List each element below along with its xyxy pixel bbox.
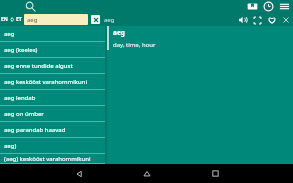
- button[interactable]: aeg (keeles): [0, 42, 105, 58]
- button[interactable]: aeg on ümber: [0, 106, 105, 122]
- staticText: aeg lendab: [4, 94, 36, 102]
- button[interactable]: Recents: [181, 164, 249, 183]
- button[interactable]: Search: [25, 1, 36, 12]
- button[interactable]: Back: [45, 164, 113, 183]
- button[interactable]: aeg keskööst varahommikuni: [0, 74, 105, 90]
- staticText: aeg: [104, 16, 115, 24]
- staticText: (aeg) keskööst varahommikuni: [4, 155, 91, 163]
- staticText: aeg keskööst varahommikuni: [4, 78, 87, 86]
- button[interactable]: Fullscreen: [253, 16, 262, 25]
- staticText: aeg enne tundide algust: [4, 62, 73, 70]
- button[interactable]: EN: [1, 16, 22, 23]
- button[interactable]: Favorite: [267, 15, 277, 25]
- button[interactable]: Home: [113, 164, 181, 183]
- button[interactable]: aeg): [0, 138, 105, 154]
- staticText: aeg): [4, 142, 17, 150]
- button[interactable]: aeg lendab: [0, 90, 105, 106]
- button[interactable]: Saved: [247, 1, 258, 12]
- button[interactable]: Pronounce: [238, 15, 248, 25]
- staticText: aeg on ümber: [4, 110, 44, 118]
- staticText: EN: [1, 16, 8, 23]
- button[interactable]: Close: [282, 16, 290, 24]
- button[interactable]: aeg enne tundide algust: [0, 58, 105, 74]
- staticText: aeg: [4, 30, 15, 38]
- button[interactable]: aeg: [0, 26, 105, 42]
- staticText: aeg: [113, 28, 125, 37]
- staticText: aeg (keeles): [4, 46, 38, 54]
- staticText: day, time, hour: [113, 41, 156, 49]
- button[interactable]: Menu: [279, 1, 290, 12]
- button[interactable]: aeg: [24, 14, 88, 25]
- button[interactable]: aeg parandab haavad: [0, 122, 105, 138]
- staticText: aeg: [27, 16, 38, 24]
- button[interactable]: (aeg) keskööst varahommikuni: [0, 154, 105, 164]
- staticText: aeg parandab haavad: [4, 126, 66, 134]
- button[interactable]: Clear: [91, 15, 100, 24]
- button[interactable]: History: [263, 1, 274, 12]
- staticText: ET: [16, 16, 22, 23]
